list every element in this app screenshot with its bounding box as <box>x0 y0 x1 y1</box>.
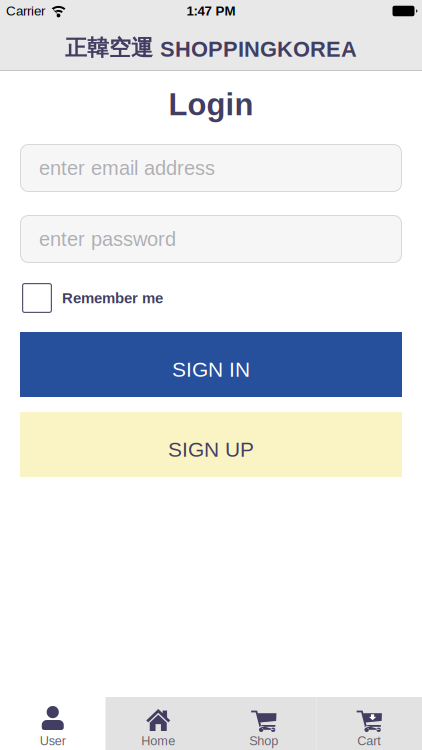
button[interactable]: Shop <box>211 697 316 750</box>
staticText: Shop <box>249 734 278 748</box>
button[interactable]: SIGN UP <box>20 412 402 477</box>
staticText: Remember me <box>62 290 163 306</box>
button[interactable]: Home <box>105 697 211 750</box>
staticText: SIGN UP <box>168 438 254 461</box>
button[interactable]: enter password <box>20 215 402 263</box>
staticText: 1:47 PM <box>186 4 235 18</box>
staticText: 正韓空運 SHOPPINGKOREA <box>65 34 357 62</box>
staticText: Carrier <box>6 4 45 18</box>
button[interactable]: Remember me <box>22 283 52 313</box>
button[interactable]: SIGN IN <box>20 332 402 397</box>
button[interactable]: User <box>0 697 105 750</box>
staticText: Login <box>168 87 253 122</box>
staticText: enter password <box>39 228 176 250</box>
button[interactable]: enter email address <box>20 144 402 192</box>
staticText: SIGN IN <box>172 358 250 381</box>
staticText: Cart <box>357 734 381 748</box>
staticText: enter email address <box>39 157 215 179</box>
button[interactable]: Cart <box>316 697 422 750</box>
staticText: User <box>40 734 66 748</box>
staticText: Home <box>141 734 175 748</box>
